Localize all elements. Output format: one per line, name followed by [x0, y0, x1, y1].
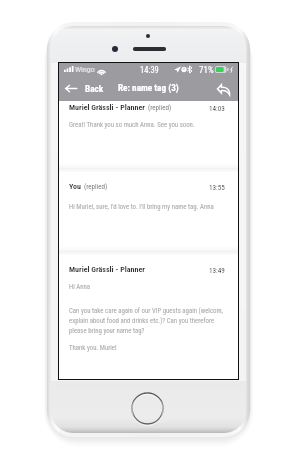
button[interactable]: Reply: [216, 83, 230, 95]
button[interactable]: Re: name tag (3): [118, 82, 179, 93]
staticText: Can you take care again of our VIP guest…: [69, 307, 232, 334]
staticText: Muriel Grässli - Planner: [69, 265, 145, 274]
button[interactable]: Muriel Grässli - Planner: [59, 103, 238, 112]
staticText: Back: [85, 83, 104, 94]
staticText: 14:39: [140, 65, 159, 75]
staticText: 13:55: [209, 183, 225, 191]
button[interactable]: Back: [65, 83, 107, 94]
button[interactable]: You: [59, 182, 238, 191]
staticText: Muriel Grässli - Planner: [69, 103, 145, 112]
staticText: 14:03: [209, 104, 225, 112]
staticText: Hi Anna: [69, 283, 91, 291]
button[interactable]: Muriel Grässli - Planner: [59, 265, 238, 274]
staticText: 13:49: [209, 266, 225, 274]
staticText: Re: name tag (3): [118, 82, 179, 93]
staticText: Wingo: [75, 65, 95, 74]
staticText: Hi Muriel, sure, I'd love to. I'll bring…: [69, 203, 214, 211]
staticText: You: [69, 182, 81, 191]
staticText: Thank you. Muriel: [69, 344, 117, 352]
staticText: (replied): [84, 183, 108, 191]
staticText: (replied): [148, 104, 172, 112]
staticText: Great! Thank you so much Anna. See you s…: [69, 121, 195, 129]
staticText: 71%: [199, 65, 214, 76]
